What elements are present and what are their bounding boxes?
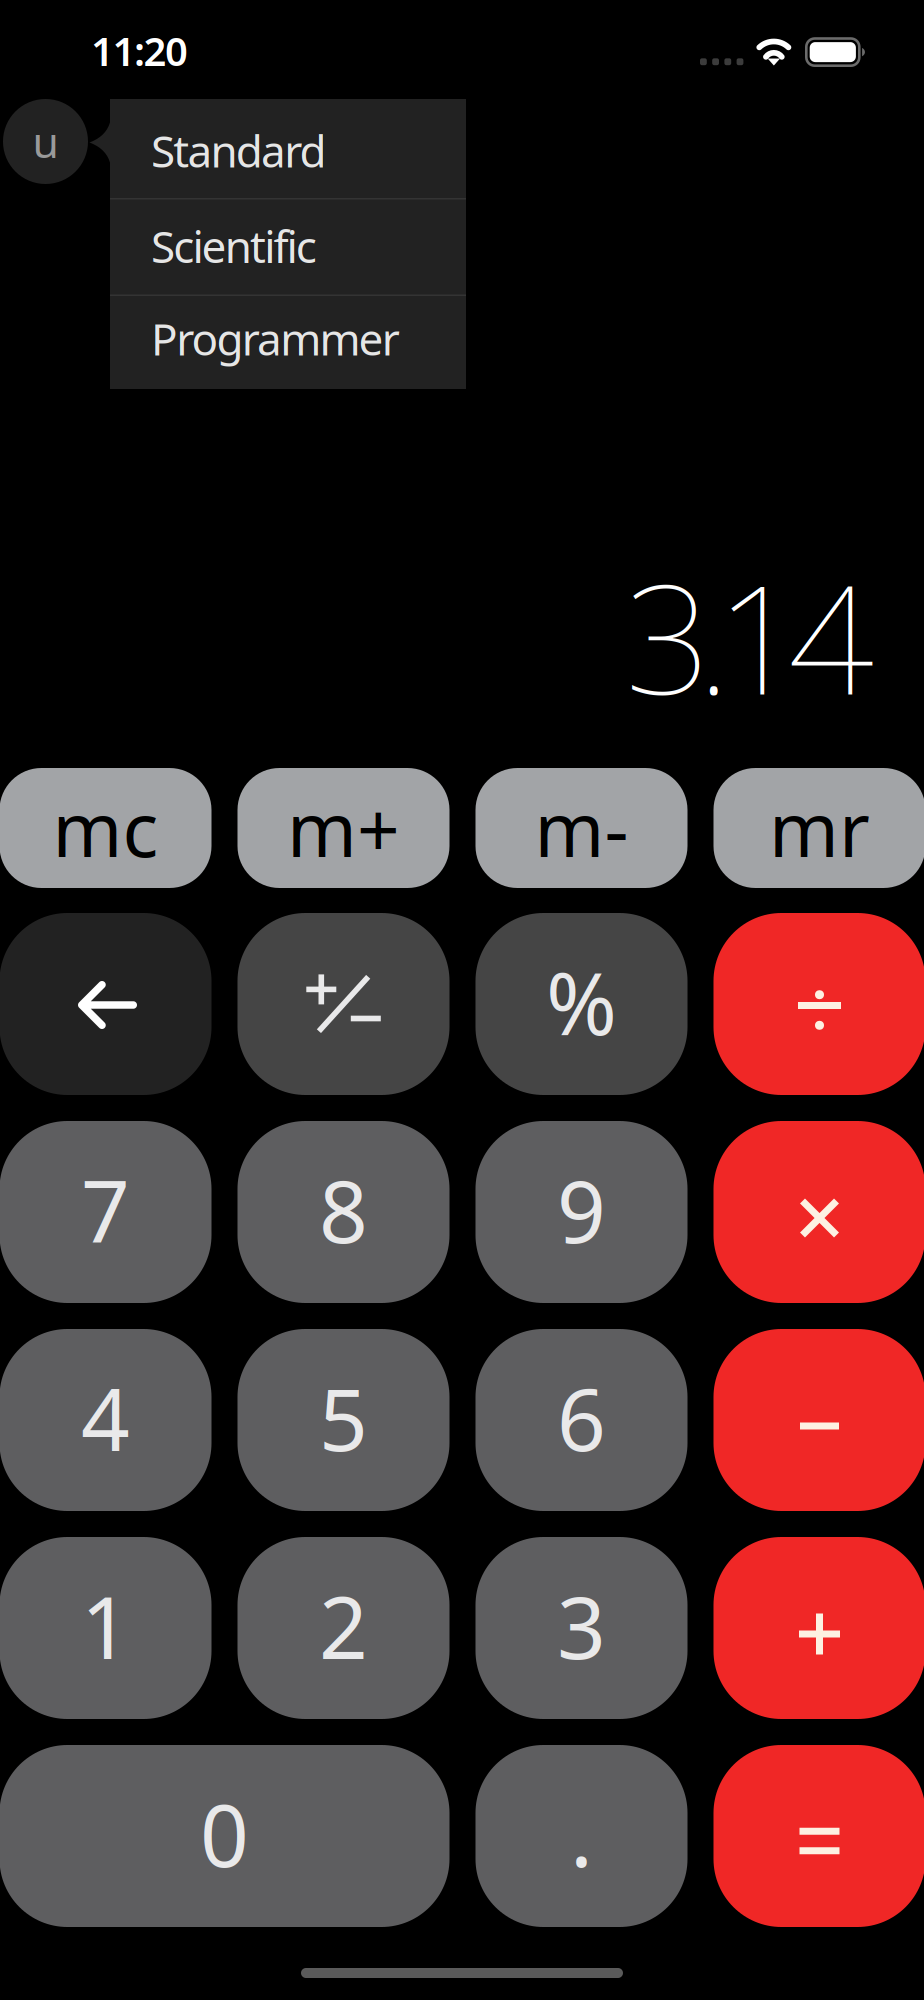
button[interactable]: 0 [0, 0, 450, 182]
staticText: m+ [287, 778, 400, 878]
button[interactable]: . [0, 0, 212, 182]
button[interactable]: 8 [0, 0, 212, 182]
staticText: Programmer [151, 309, 400, 368]
staticText: . [570, 1777, 593, 1891]
button[interactable]: Multiply [0, 0, 212, 182]
button[interactable]: Equals [0, 0, 212, 182]
button[interactable]: 5 [0, 0, 212, 182]
button[interactable]: Divide [0, 0, 212, 182]
button[interactable]: Programmer [110, 296, 466, 389]
staticText: 9 [557, 1153, 606, 1267]
staticText: 5 [319, 1361, 368, 1475]
button[interactable]: m- [0, 0, 212, 120]
button[interactable]: Plus [0, 0, 212, 182]
staticText: mr [769, 778, 870, 878]
button[interactable]: m+ [0, 0, 212, 120]
button[interactable]: mc [0, 0, 212, 120]
button[interactable]: 1 [0, 0, 212, 182]
button[interactable]: Backspace [0, 0, 212, 182]
button[interactable]: Calculator mode [3, 99, 88, 184]
button[interactable]: Standard [110, 99, 466, 198]
staticText: 7 [81, 1153, 130, 1267]
staticText: 2 [319, 1569, 368, 1683]
staticText: u [32, 113, 58, 170]
staticText: Standard [151, 121, 326, 180]
button[interactable]: mr [0, 0, 212, 120]
staticText: 3 [557, 1569, 606, 1683]
staticText: 1 [81, 1569, 130, 1683]
button[interactable]: Scientific [110, 199, 466, 294]
button[interactable]: 7 [0, 0, 212, 182]
staticText: 3.14 [625, 536, 874, 736]
staticText: m- [534, 778, 628, 878]
button[interactable]: Minus [0, 0, 212, 182]
staticText: 0 [200, 1777, 249, 1891]
staticText: 4 [81, 1361, 130, 1475]
button[interactable]: 9 [0, 0, 212, 182]
staticText: mc [52, 778, 158, 878]
button[interactable]: 3 [0, 0, 212, 182]
staticText: 8 [319, 1153, 368, 1267]
button[interactable]: Plus minus [0, 0, 212, 182]
button[interactable]: 6 [0, 0, 212, 182]
button[interactable]: 2 [0, 0, 212, 182]
button[interactable]: % [0, 0, 212, 182]
staticText: % [546, 945, 617, 1059]
staticText: 11:20 [91, 24, 188, 77]
button[interactable]: 4 [0, 0, 212, 182]
staticText: Scientific [151, 217, 317, 275]
staticText: 6 [557, 1361, 606, 1475]
